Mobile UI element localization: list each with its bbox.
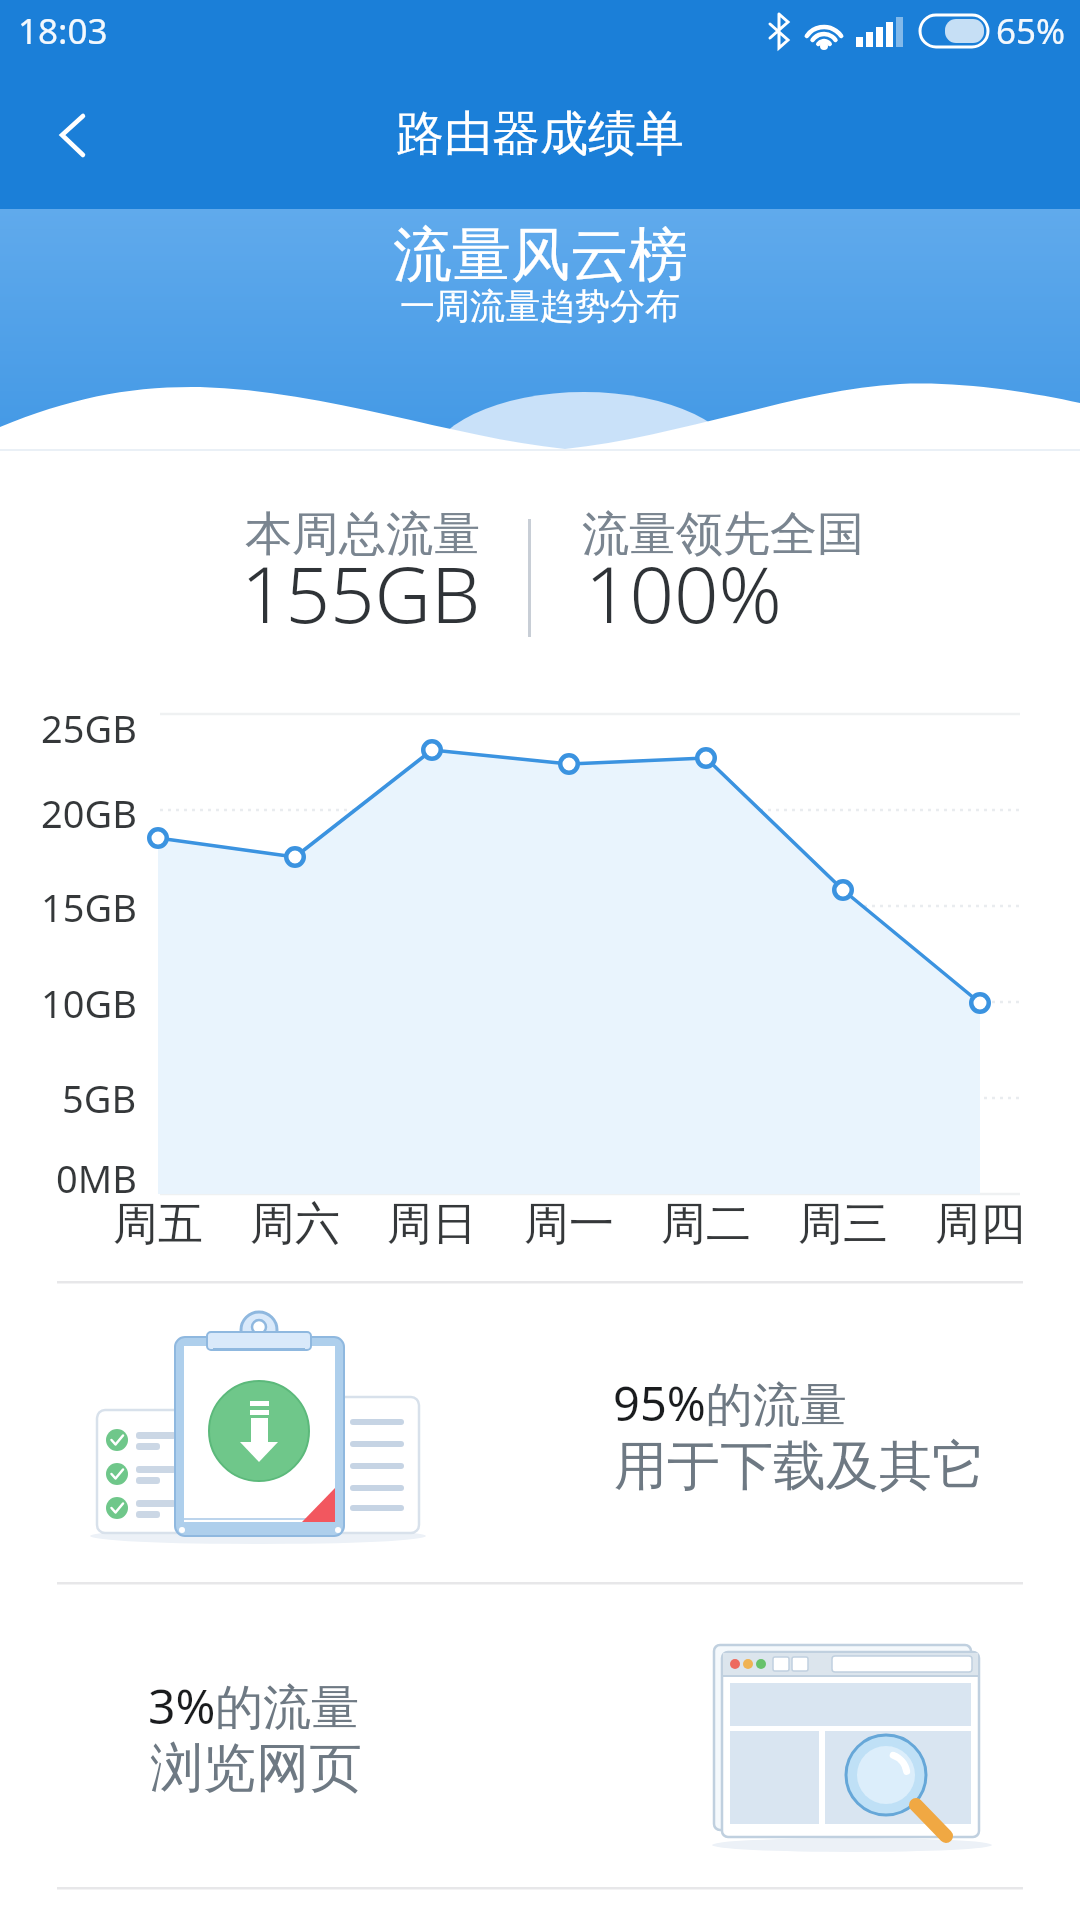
staticText: 浏览网页 bbox=[150, 1735, 362, 1802]
staticText: 周日 bbox=[387, 1196, 477, 1253]
staticText: 路由器成绩单 bbox=[396, 104, 684, 164]
staticText: 5GB bbox=[62, 1072, 137, 1124]
staticText: 周二 bbox=[661, 1196, 751, 1253]
staticText: 3%的流量 bbox=[148, 1673, 360, 1739]
staticText: 10GB bbox=[41, 977, 137, 1029]
staticText: 0MB bbox=[56, 1152, 137, 1204]
staticText: 20GB bbox=[41, 787, 137, 839]
staticText: 15GB bbox=[41, 881, 137, 933]
staticText: 流量风云榜 bbox=[393, 218, 688, 292]
staticText: 流量领先全国 bbox=[582, 505, 864, 564]
staticText: 100% bbox=[585, 540, 782, 646]
staticText: 一周流量趋势分布 bbox=[400, 284, 680, 328]
staticText: 本周总流量 bbox=[245, 505, 480, 564]
staticText: 155GB bbox=[241, 540, 481, 646]
staticText: 周五 bbox=[113, 1196, 203, 1253]
staticText: 周四 bbox=[935, 1196, 1025, 1253]
staticText: 65% bbox=[996, 7, 1066, 55]
staticText: 25GB bbox=[41, 702, 137, 754]
button[interactable] bbox=[30, 90, 120, 180]
staticText: 用于下载及其它 bbox=[614, 1433, 985, 1500]
staticText: 95%的流量 bbox=[613, 1371, 847, 1435]
staticText: 18:03 bbox=[18, 7, 108, 55]
staticText: 周三 bbox=[798, 1196, 888, 1253]
staticText: 周一 bbox=[524, 1196, 614, 1253]
staticText: 周六 bbox=[250, 1196, 340, 1253]
